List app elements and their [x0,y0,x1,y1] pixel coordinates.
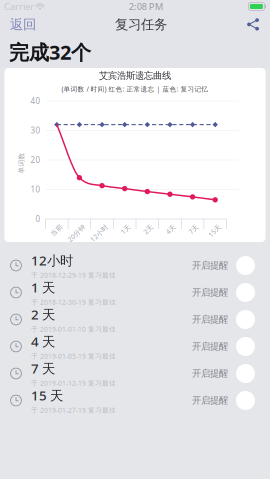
button[interactable]: 4 天 [0,333,270,360]
staticText: 于 2019-01-27-19 复习最佳 [31,406,116,415]
staticText: 1 天 [31,278,55,296]
staticText: 30 [30,125,40,136]
staticText: Carrier [4,0,34,13]
staticText: 艾宾浩斯遗忘曲线 [99,70,171,81]
staticText: 开启提醒 [192,341,228,352]
staticText: 复习任务 [115,16,167,33]
button[interactable]: 12小时 [0,252,270,279]
staticText: 于 2018-12-29-19 复习最佳 [31,271,116,280]
staticText: (单词数 / 时间) 红色: 正常遗忘 | 蓝色: 复习记忆 [61,84,208,93]
staticText: 于 2019-01-01-10 复习最佳 [31,325,116,334]
staticText: 开启提醒 [192,314,228,325]
staticText: 20分钟 [65,229,87,237]
staticText: 40 [30,96,40,106]
button[interactable]: 7 天 [0,360,270,387]
staticText: 于 2018-12-30-19 复习最佳 [31,298,116,307]
staticText: 15天 [208,229,223,237]
staticText: 2 天 [31,305,55,323]
staticText: 2:08 PM [129,0,164,13]
staticText: 单词数 [11,159,32,167]
staticText: 10 [30,184,40,195]
button[interactable]: 2 天 [0,306,270,333]
staticText: 4 天 [31,332,55,350]
button[interactable]: 15 天 [0,387,270,414]
staticText: 20 [30,155,40,165]
staticText: 2天 [144,229,155,237]
staticText: 返回 [10,16,36,33]
staticText: 于 2019-01-05-19 复习最佳 [31,352,116,361]
staticText: 7 天 [31,359,55,377]
staticText: 4天 [167,229,178,237]
button[interactable]: Share [236,13,270,36]
staticText: 开启提醒 [192,287,228,298]
staticText: 开启提醒 [192,260,228,271]
button[interactable]: 返回 [0,13,46,36]
staticText: 当前 [51,229,65,237]
staticText: 开启提醒 [192,395,228,406]
staticText: 开启提醒 [192,368,228,379]
staticText: 15 天 [31,386,63,404]
staticText: 12小时 [88,229,110,237]
button[interactable]: 1 天 [0,279,270,306]
staticText: 于 2019-01-12-19 复习最佳 [31,379,116,388]
staticText: 1天 [122,229,133,237]
staticText: 12小时 [31,251,73,269]
staticText: 0 [35,214,40,224]
staticText: 完成32个 [9,39,91,65]
staticText: 7天 [190,229,201,237]
